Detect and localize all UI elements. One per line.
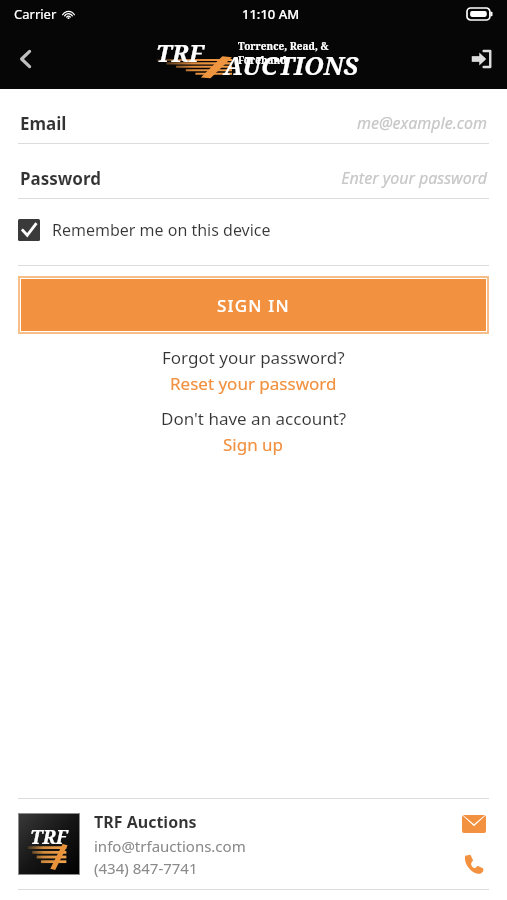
button[interactable]: Sign up	[223, 433, 284, 456]
staticText: Remember me on this device	[52, 219, 271, 241]
staticText: (434) 847-7741	[94, 858, 198, 878]
button[interactable]: Email TRF Auctions	[459, 809, 489, 839]
staticText: SIGN IN	[217, 294, 290, 317]
staticText: TRF	[30, 824, 68, 850]
staticText: info@trfauctions.com	[94, 836, 246, 856]
staticText: TRF	[156, 36, 204, 69]
staticText: me@example.com	[356, 112, 487, 134]
staticText: Reset your password	[170, 372, 337, 395]
staticText: Email	[20, 112, 67, 135]
button[interactable]: Password	[0, 158, 507, 213]
button[interactable]: Email	[0, 103, 507, 158]
staticText: Forgot your password?	[162, 346, 345, 369]
button[interactable]: Remember me on this device	[18, 213, 489, 247]
staticText: Torrence, Read, & Forehand	[238, 39, 361, 67]
button[interactable]: Reset your password	[170, 372, 337, 395]
button[interactable]: Sign in	[455, 33, 507, 85]
staticText: AUCTIONS	[224, 48, 359, 82]
button[interactable]: SIGN IN	[21, 279, 486, 331]
staticText: TRF Auctions	[94, 811, 197, 833]
staticText: 11:10 AM	[242, 5, 300, 23]
staticText: Don't have an account?	[161, 407, 347, 430]
button[interactable]: Back	[0, 33, 52, 85]
button[interactable]: Call TRF Auctions	[459, 849, 489, 879]
staticText: Enter your password	[341, 167, 487, 189]
staticText: Carrier	[14, 5, 57, 23]
staticText: Password	[20, 167, 101, 190]
staticText: Sign up	[223, 433, 284, 456]
